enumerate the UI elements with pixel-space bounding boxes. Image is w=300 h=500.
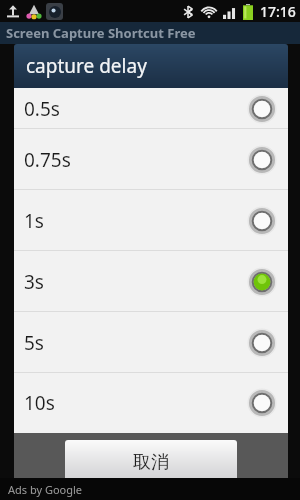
staticText: 取消 [133, 451, 169, 474]
staticText: 17:16 [260, 2, 296, 21]
staticText: 5s [24, 330, 44, 356]
button[interactable]: 10s [14, 373, 288, 433]
staticText: 1s [24, 208, 44, 234]
button[interactable]: 3s [14, 251, 288, 312]
button[interactable]: 取消 [65, 440, 237, 484]
button[interactable]: 0.5s [14, 88, 288, 129]
staticText: 0.75s [24, 147, 71, 173]
staticText: Screen Capture Shortcut Free [6, 24, 196, 42]
staticText: Ads by Google [8, 482, 83, 497]
button[interactable]: 1s [14, 190, 288, 251]
staticText: 10s [24, 390, 55, 416]
staticText: 3s [24, 269, 44, 295]
button[interactable]: 5s [14, 312, 288, 373]
button[interactable]: 0.75s [14, 129, 288, 190]
staticText: 0.5s [24, 96, 60, 122]
staticText: capture delay [26, 53, 147, 79]
